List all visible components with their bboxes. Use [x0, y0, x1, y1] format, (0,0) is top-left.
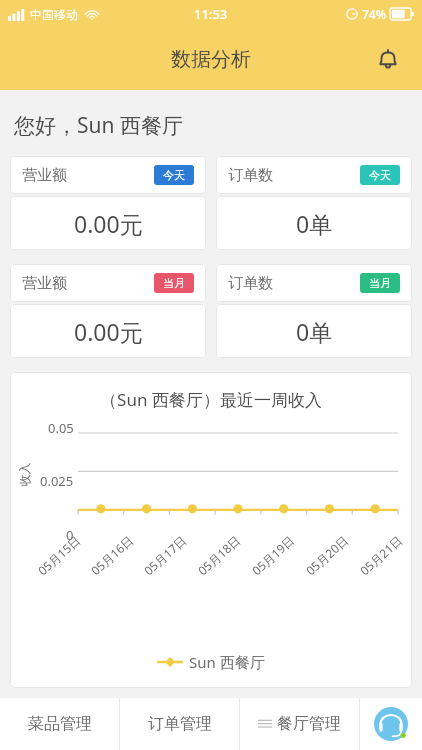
staticText: 11:53 [194, 5, 228, 23]
staticText: 订单数 [228, 274, 273, 293]
staticText: 05月15日 [34, 532, 84, 578]
button[interactable]: 餐厅管理 [240, 698, 359, 750]
staticText: 今天 [369, 168, 391, 182]
staticText: 0单 [296, 208, 333, 239]
staticText: 餐厅管理 [277, 714, 341, 734]
staticText: 您好，Sun 西餐厅 [14, 111, 183, 140]
button[interactable]: 营业额 [10, 264, 206, 358]
staticText: 菜品管理 [28, 714, 92, 734]
staticText: 0.05 [48, 419, 74, 437]
staticText: 当月 [163, 276, 185, 290]
staticText: 收入 [16, 462, 31, 486]
staticText: （Sun 西餐厅）最近一周收入 [10, 388, 412, 411]
staticText: 当月 [369, 276, 391, 290]
staticText: 05月18日 [194, 532, 244, 578]
staticText: 今天 [163, 168, 185, 182]
staticText: 05月21日 [356, 532, 406, 578]
button[interactable]: Customer support [360, 698, 422, 750]
staticText: 订单管理 [148, 714, 212, 734]
staticText: 05月16日 [87, 532, 137, 578]
staticText: 74% [362, 6, 386, 22]
staticText: 0.025 [40, 472, 74, 490]
button[interactable]: Notifications [368, 39, 408, 79]
button[interactable]: 订单数 [216, 156, 412, 250]
staticText: 0 [66, 526, 74, 544]
staticText: 营业额 [22, 166, 67, 185]
button[interactable]: 订单管理 [120, 698, 239, 750]
staticText: 05月20日 [302, 532, 352, 578]
button[interactable]: 订单数 [216, 264, 412, 358]
staticText: 0单 [296, 316, 333, 347]
staticText: 05月17日 [140, 532, 190, 578]
staticText: 中国移动 [30, 7, 78, 22]
staticText: 数据分析 [171, 47, 251, 72]
staticText: 05月19日 [248, 532, 298, 578]
staticText: 订单数 [228, 166, 273, 185]
staticText: 营业额 [22, 274, 67, 293]
button[interactable]: 菜品管理 [0, 698, 119, 750]
button[interactable]: 营业额 [10, 156, 206, 250]
staticText: 0.00元 [74, 316, 143, 347]
staticText: 0.00元 [74, 208, 143, 239]
staticText: Sun 西餐厅 [189, 652, 265, 672]
